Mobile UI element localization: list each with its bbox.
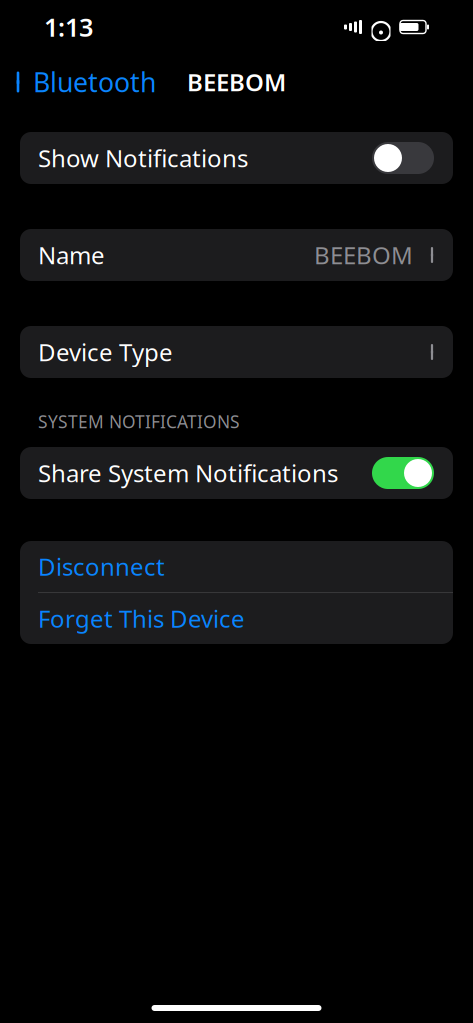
staticText: Share System Notifications <box>38 457 338 489</box>
button[interactable]: Disconnect <box>20 541 453 592</box>
button[interactable]: Share System Notifications <box>20 447 453 499</box>
staticText: BEEBOM <box>187 66 286 98</box>
staticText: 1:13 <box>44 10 93 44</box>
staticText: Name <box>38 239 105 271</box>
staticText: Forget This Device <box>38 603 245 634</box>
staticText: BEEBOM <box>314 239 413 271</box>
staticText: Device Type <box>38 336 173 368</box>
button[interactable]: Name <box>20 229 453 281</box>
button[interactable]: Bluetooth <box>2 60 168 104</box>
button[interactable]: Device Type <box>20 326 453 378</box>
button[interactable]: Forget This Device <box>20 593 453 644</box>
button[interactable]: Show Notifications <box>20 132 453 184</box>
staticText: Show Notifications <box>38 142 248 174</box>
staticText: SYSTEM NOTIFICATIONS <box>38 410 240 433</box>
staticText: Bluetooth <box>33 64 156 100</box>
staticText: Disconnect <box>38 551 165 582</box>
